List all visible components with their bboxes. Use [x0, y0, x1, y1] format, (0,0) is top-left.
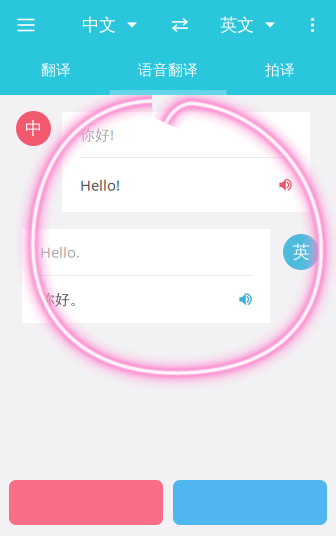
staticText: 英 [292, 241, 309, 263]
button[interactable]: Swap languages [160, 3, 200, 47]
staticText: 语音翻译 [138, 61, 198, 79]
button[interactable]: 语音翻译 [112, 50, 224, 95]
button[interactable]: Hello. [22, 229, 270, 323]
staticText: 拍译 [265, 61, 295, 79]
button[interactable]: 你好! [62, 112, 310, 212]
staticText: 你好! [80, 125, 114, 144]
button[interactable]: 中文 [74, 3, 145, 47]
button[interactable]: 翻译 [0, 50, 112, 95]
staticText: 中 [25, 118, 42, 139]
button[interactable]: Hold to speak English [173, 480, 327, 525]
button[interactable]: 英文 [212, 3, 283, 47]
staticText: Hello. [40, 242, 80, 262]
button[interactable]: 拍译 [224, 50, 336, 95]
staticText: Hello! [80, 175, 120, 195]
button[interactable]: Menu [4, 3, 48, 47]
staticText: 英文 [220, 14, 254, 36]
staticText: 中文 [82, 14, 116, 36]
staticText: 你好。 [40, 290, 85, 308]
button[interactable]: More options [292, 3, 332, 47]
staticText: 翻译 [41, 61, 71, 79]
button[interactable]: Hold to speak Chinese [9, 480, 163, 525]
